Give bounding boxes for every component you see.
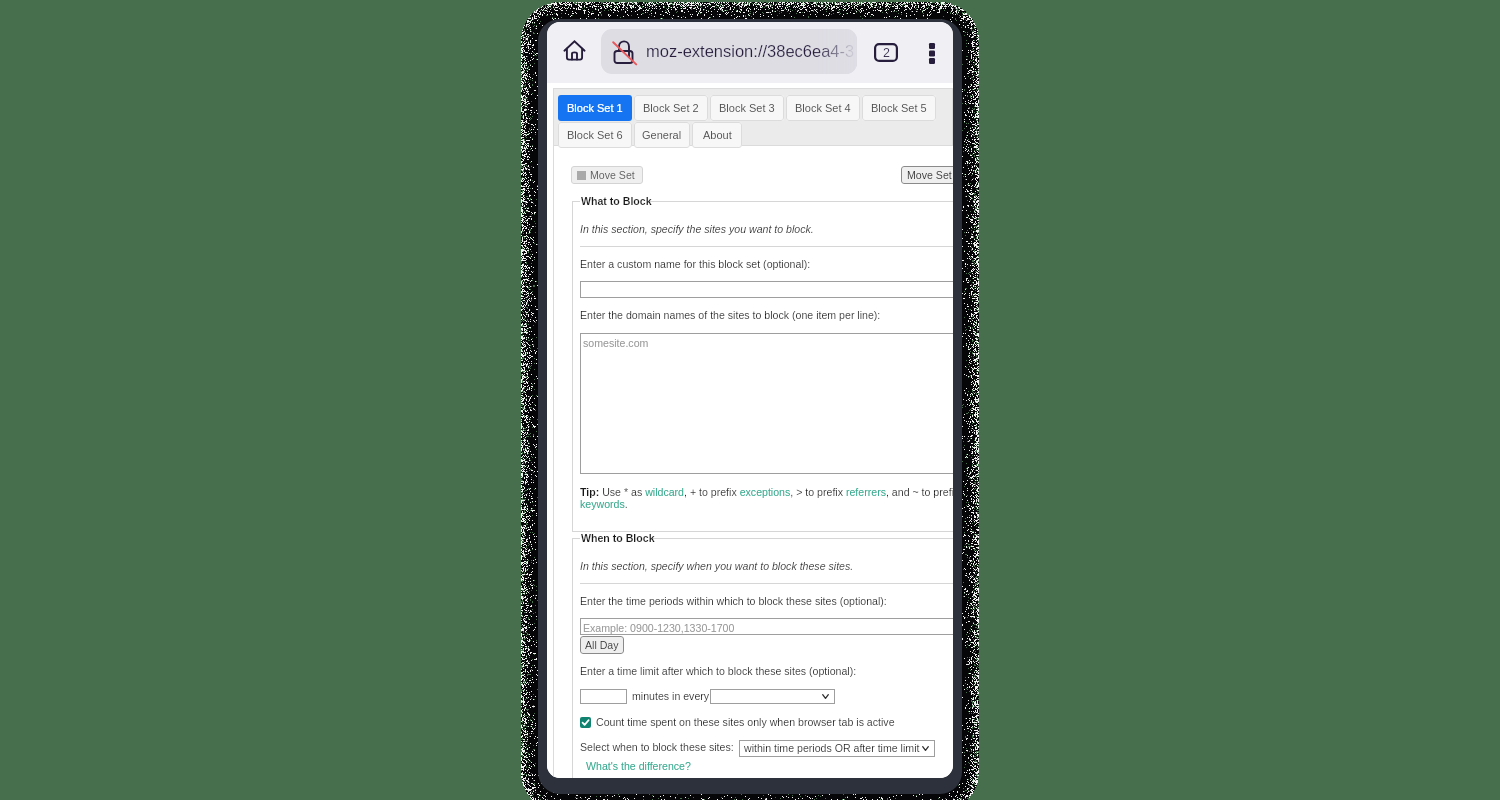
staticText: About (703, 129, 732, 141)
staticText: within time periods OR after time limit (744, 742, 920, 754)
button[interactable]: Text field (580, 281, 953, 298)
staticText: Enter a time limit after which to block … (580, 665, 857, 677)
button[interactable]: Block Set 5 (862, 95, 936, 121)
staticText: Block Set 6 (567, 129, 623, 141)
staticText: minutes in every (632, 690, 710, 702)
button[interactable]: General (634, 122, 690, 148)
staticText: In this section, specify when you want t… (580, 560, 854, 572)
button[interactable]: Block Set 4 (786, 95, 860, 121)
staticText: Block Set 2 (643, 102, 699, 114)
staticText: General (642, 129, 682, 141)
staticText: moz-extension://38ec6ea4-3 (646, 42, 855, 60)
staticText: Block Set 4 (795, 102, 851, 114)
button[interactable]: Dropdown (710, 689, 835, 704)
staticText: What's the difference? (586, 760, 691, 772)
button[interactable]: About (692, 122, 742, 148)
button[interactable]: Text field (580, 618, 953, 635)
staticText: What to Block (581, 195, 652, 207)
staticText: All Day (585, 639, 619, 651)
staticText: In this section, specify the sites you w… (580, 223, 814, 235)
button[interactable]: Block Set 6 (558, 122, 632, 148)
button[interactable]: Block Set 2 (634, 95, 708, 121)
button[interactable]: Dropdown (739, 740, 935, 757)
staticText: Move Set (590, 169, 635, 181)
button[interactable]: Move Set (901, 166, 953, 184)
button[interactable]: Home (556, 32, 592, 68)
staticText: Tip: Use * as wildcard, + to prefix exce… (580, 486, 953, 498)
staticText: keywords. (580, 498, 628, 510)
staticText: Count time spent on these sites only whe… (596, 716, 895, 728)
staticText: 2 (883, 46, 890, 60)
staticText: Enter the time periods within which to b… (580, 595, 887, 607)
button[interactable]: Move Set (571, 166, 643, 184)
staticText: Select when to block these sites: (580, 741, 734, 753)
staticText: Move Set (907, 169, 952, 181)
button[interactable]: More options (918, 36, 946, 70)
button[interactable]: moz-extension://38ec6ea4-3 (601, 29, 857, 74)
staticText: Example: 0900-1230,1330-1700 (583, 622, 735, 634)
staticText: When to Block (581, 532, 655, 544)
staticText: Block Set 3 (719, 102, 775, 114)
button[interactable]: Tabs (871, 38, 901, 66)
button[interactable]: Text field (580, 689, 627, 704)
button[interactable]: Count time spent on these sites only whe… (580, 716, 895, 728)
staticText: Block Set 1 (567, 102, 623, 114)
staticText: Enter the domain names of the sites to b… (580, 309, 881, 321)
button[interactable]: All Day (580, 636, 624, 654)
button[interactable]: Text field (580, 333, 953, 474)
staticText: Enter a custom name for this block set (… (580, 258, 811, 270)
staticText: Block Set 5 (871, 102, 927, 114)
button[interactable]: Block Set 3 (710, 95, 784, 121)
staticText: somesite.com (583, 337, 649, 349)
button[interactable]: Block Set 1 (558, 95, 632, 121)
